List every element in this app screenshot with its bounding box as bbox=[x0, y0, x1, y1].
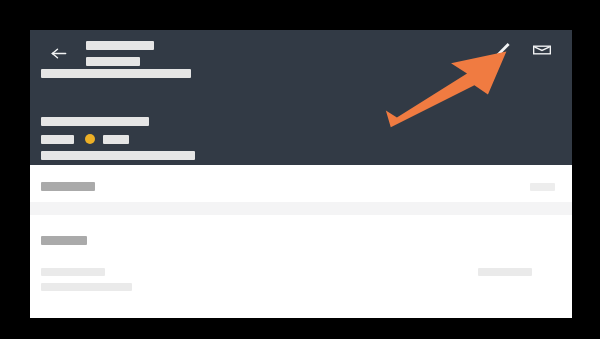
button[interactable]: Mail bbox=[526, 34, 558, 66]
button[interactable]: Back bbox=[40, 35, 76, 71]
button[interactable] bbox=[30, 165, 572, 202]
button[interactable]: Edit bbox=[486, 34, 518, 66]
button[interactable] bbox=[30, 256, 572, 300]
